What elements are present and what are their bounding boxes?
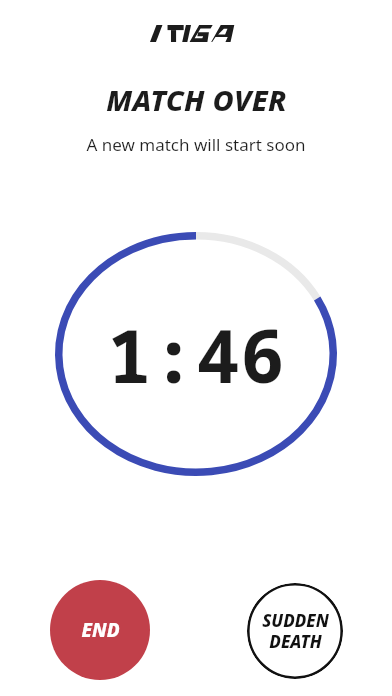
staticText: MATCH OVER	[106, 80, 287, 119]
staticText: 1:46	[107, 304, 285, 405]
staticText: A new match will start soon	[86, 133, 306, 156]
staticText: SUDDEN DEATH	[262, 609, 329, 653]
button[interactable]: END	[50, 580, 150, 680]
staticText: END	[81, 617, 120, 643]
button[interactable]: SUDDEN DEATH	[247, 583, 343, 679]
